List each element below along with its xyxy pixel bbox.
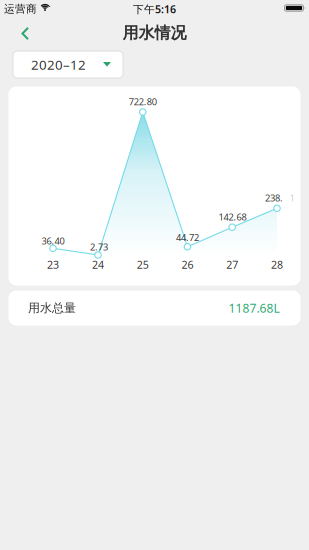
staticText: 27 — [226, 258, 238, 272]
staticText: 23 — [47, 258, 59, 272]
staticText: 36.40 — [41, 235, 64, 247]
staticText: 下午5:16 — [133, 2, 176, 16]
staticText: 142.68 — [218, 211, 246, 223]
staticText: 722.80 — [129, 95, 157, 108]
staticText: 24 — [92, 258, 104, 272]
staticText: 26 — [181, 258, 193, 272]
staticText: 28 — [271, 258, 283, 272]
staticText: 25 — [137, 258, 149, 272]
staticText: 运营商 — [4, 2, 37, 15]
staticText: 用水情况 — [122, 23, 186, 43]
staticText: 44.72 — [176, 231, 199, 244]
staticText: 2020–12 — [31, 56, 86, 73]
staticText: 238. — [265, 192, 283, 204]
staticText: 2.73 — [90, 241, 108, 253]
button[interactable]: Back — [0, 18, 44, 48]
button[interactable]: 选择月份 2020–12 — [13, 51, 123, 78]
staticText: 1 — [289, 192, 294, 204]
staticText: 用水总量 — [28, 301, 76, 315]
staticText: 1187.68L — [228, 300, 279, 316]
